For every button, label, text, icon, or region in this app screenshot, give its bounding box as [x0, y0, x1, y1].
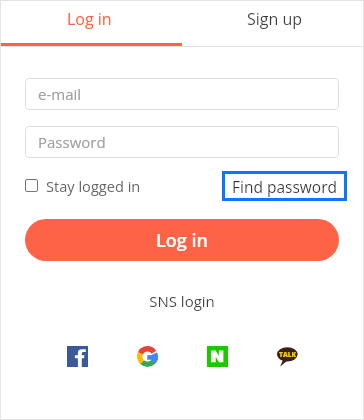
- staticText: SNS login: [0, 291, 364, 311]
- button[interactable]: Sign up: [182, 0, 364, 43]
- button[interactable]: Naver login: [207, 346, 228, 367]
- staticText: Password: [38, 132, 106, 152]
- staticText: Find password: [232, 176, 337, 197]
- staticText: e-mail: [38, 84, 82, 104]
- button[interactable]: Log in: [0, 0, 182, 43]
- staticText: Sign up: [247, 8, 303, 30]
- button[interactable]: Password: [25, 126, 339, 158]
- staticText: TALK: [279, 350, 297, 359]
- button[interactable]: Stay logged in: [25, 171, 141, 201]
- button[interactable]: Log in: [25, 219, 339, 261]
- button[interactable]: Facebook login: [67, 346, 88, 367]
- button[interactable]: Find password: [222, 171, 347, 201]
- button[interactable]: Google login: [137, 346, 158, 367]
- staticText: Stay logged in: [46, 176, 141, 196]
- staticText: Log in: [156, 228, 208, 253]
- button[interactable]: e-mail: [25, 78, 339, 110]
- button[interactable]: Kakao login: [277, 346, 298, 367]
- staticText: Log in: [67, 8, 112, 30]
